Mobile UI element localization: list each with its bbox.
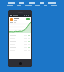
button[interactable] bbox=[10, 49, 30, 51]
button[interactable] bbox=[9, 21, 31, 33]
button[interactable]: Status bbox=[26, 18, 30, 20]
button[interactable] bbox=[9, 14, 31, 17]
button[interactable]: Status bbox=[10, 17, 30, 21]
button[interactable]: Home bbox=[19, 62, 22, 65]
button[interactable] bbox=[10, 37, 30, 39]
button[interactable]: Status bbox=[8, 10, 32, 67]
button[interactable] bbox=[10, 46, 30, 48]
button[interactable] bbox=[10, 40, 30, 42]
button[interactable] bbox=[10, 34, 30, 36]
button[interactable] bbox=[10, 43, 30, 45]
